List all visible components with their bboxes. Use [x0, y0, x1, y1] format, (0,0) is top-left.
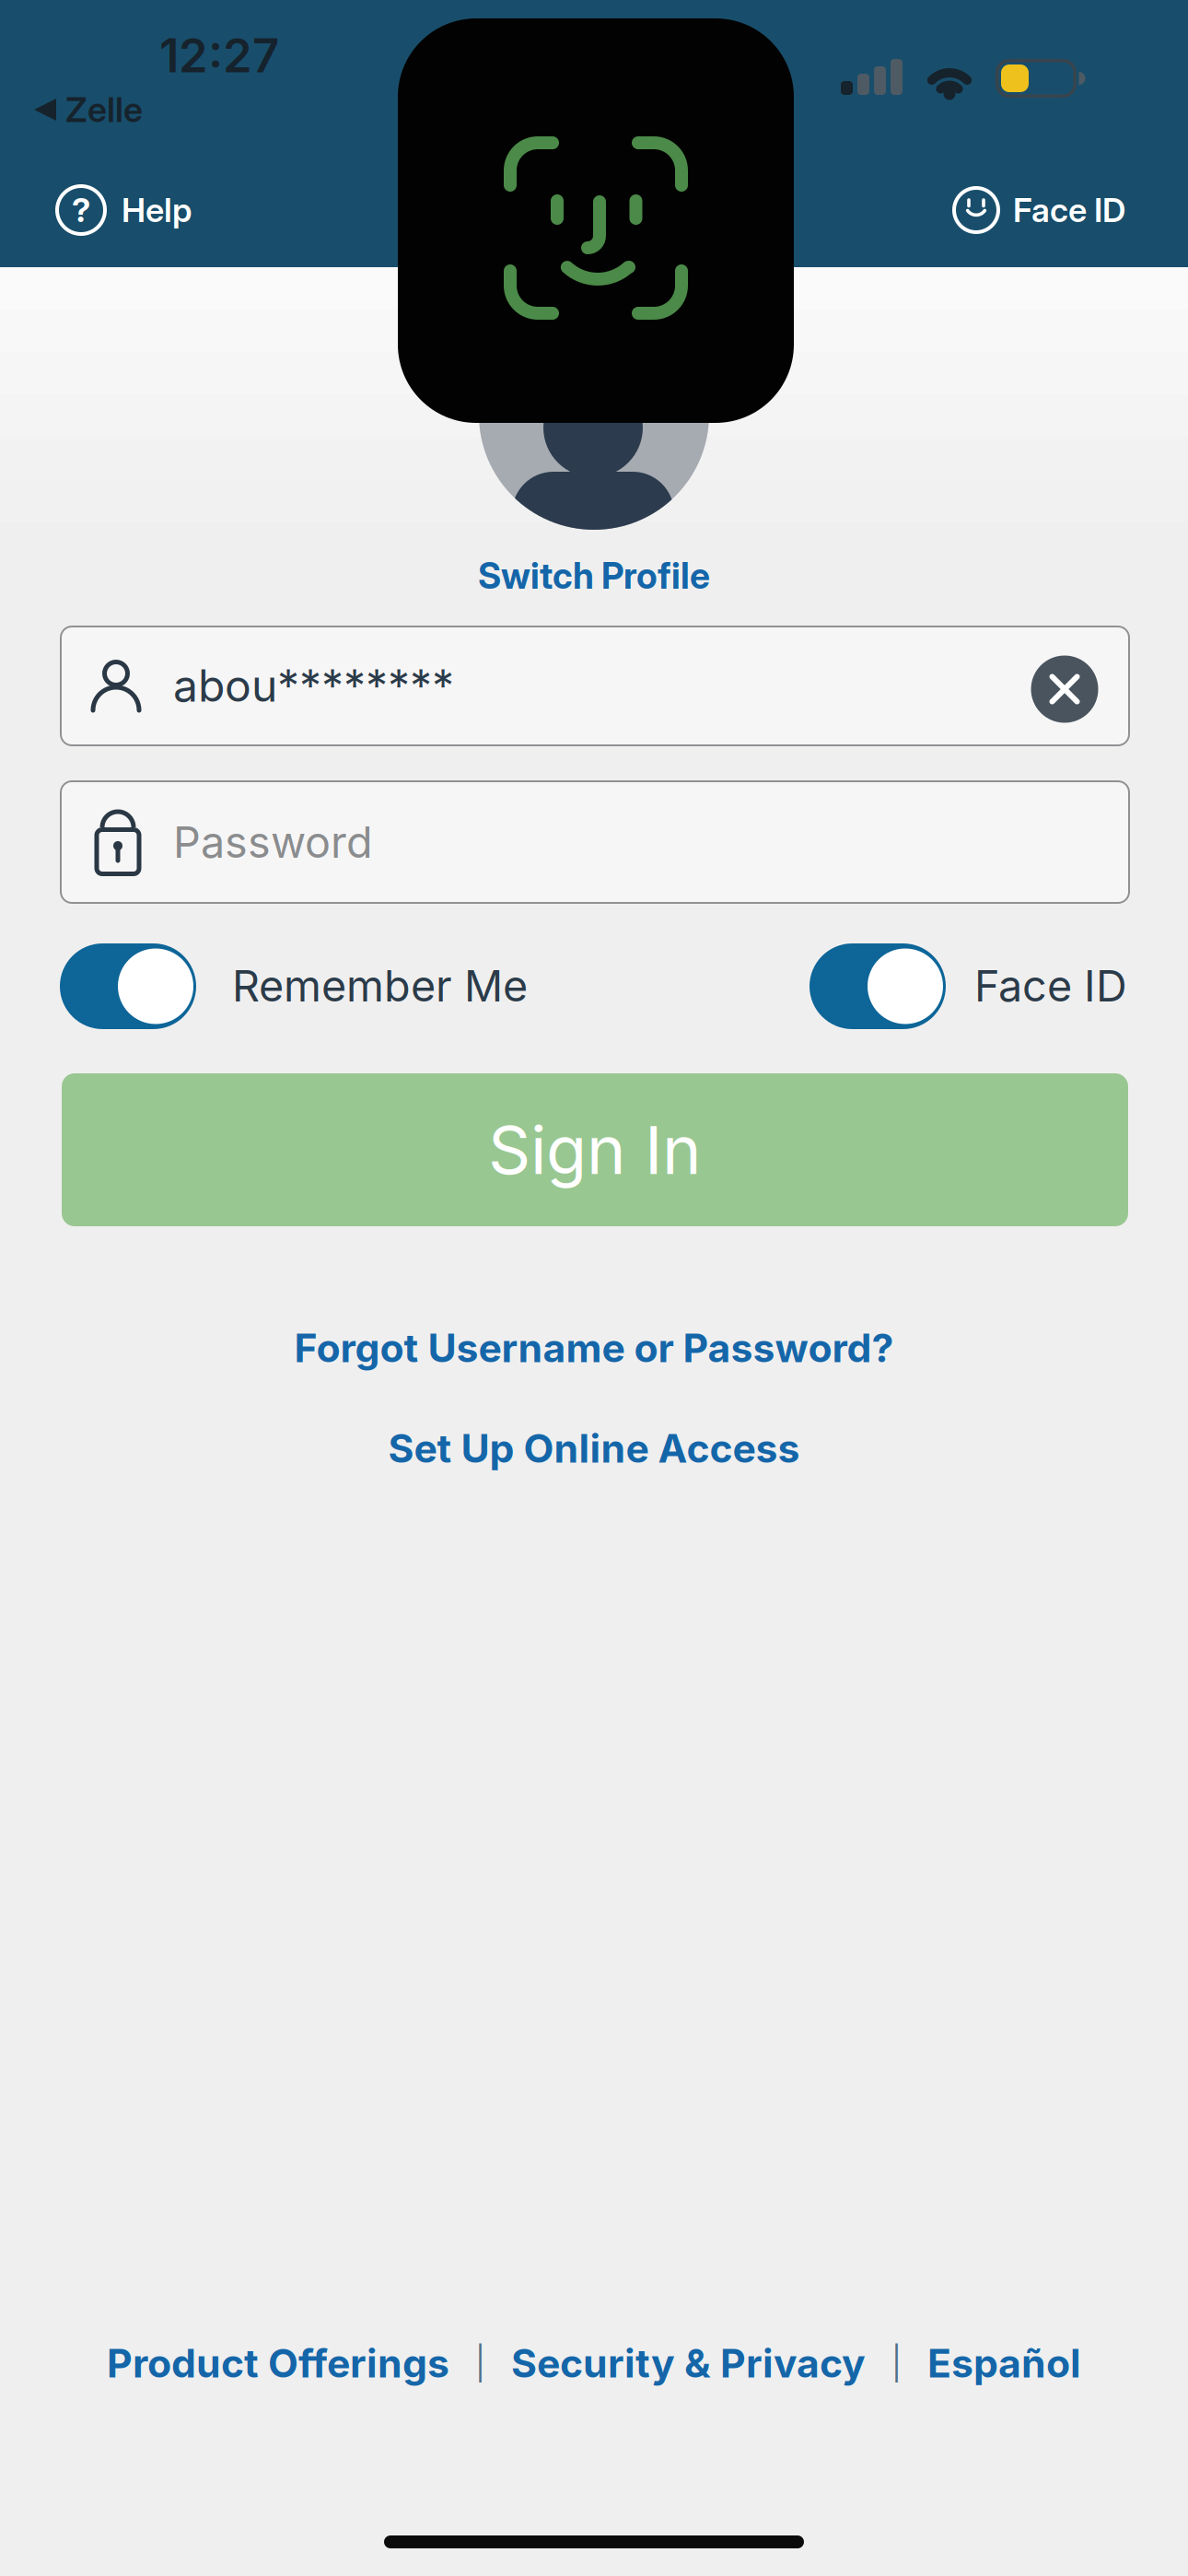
staticText: |: [891, 2344, 902, 2383]
staticText: Forgot Username or Password?: [294, 1325, 894, 1371]
button[interactable]: Switch Profile: [478, 555, 710, 597]
staticText: Switch Profile: [478, 555, 710, 597]
staticText: Product Offerings: [107, 2340, 449, 2386]
button[interactable]: ?: [55, 184, 192, 236]
button[interactable]: Sign In: [62, 1073, 1128, 1226]
button[interactable]: [60, 780, 1130, 904]
button[interactable]: [1031, 656, 1098, 723]
staticText: Set Up Online Access: [388, 1425, 800, 1471]
button[interactable]: Zelle: [34, 89, 143, 130]
staticText: Sign In: [488, 1111, 702, 1189]
staticText: Zelle: [65, 89, 143, 130]
staticText: Face ID: [974, 960, 1127, 1011]
button[interactable]: Product Offerings: [107, 2340, 449, 2386]
button[interactable]: [809, 943, 946, 1029]
staticText: ?: [72, 191, 90, 230]
button[interactable]: Forgot Username or Password?: [294, 1325, 894, 1371]
button[interactable]: Face ID: [952, 186, 1125, 234]
staticText: Face ID: [1013, 191, 1125, 230]
staticText: Remember Me: [232, 960, 528, 1011]
staticText: |: [475, 2344, 485, 2383]
button[interactable]: Español: [927, 2340, 1081, 2386]
staticText: abou********: [173, 659, 454, 712]
button[interactable]: [60, 943, 196, 1029]
staticText: Password: [173, 817, 373, 868]
staticText: Español: [927, 2340, 1081, 2386]
staticText: Help: [122, 191, 192, 230]
staticText: Security & Privacy: [511, 2340, 866, 2386]
staticText: 12:27: [159, 28, 279, 83]
button[interactable]: Set Up Online Access: [388, 1425, 800, 1471]
button[interactable]: Security & Privacy: [511, 2340, 866, 2386]
button[interactable]: [60, 626, 1130, 746]
